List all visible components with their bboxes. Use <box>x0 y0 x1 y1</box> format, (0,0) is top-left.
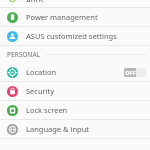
staticText: Lock screen <box>26 105 146 115</box>
staticText: Location <box>26 67 124 77</box>
button[interactable]: OFF <box>124 68 146 77</box>
staticText: PERSONAL <box>7 50 41 59</box>
button[interactable]: ASUS customized settings <box>0 27 150 45</box>
button[interactable]: Power management <box>0 8 150 26</box>
staticText: Language & input <box>26 124 146 134</box>
staticText: Power management <box>26 12 146 22</box>
staticText: Apps <box>26 0 44 2</box>
button[interactable]: Apps <box>0 0 150 7</box>
button[interactable]: Location <box>0 63 150 81</box>
staticText: Security <box>26 86 146 96</box>
button[interactable]: Language & input <box>0 120 150 138</box>
staticText: ASUS customized settings <box>26 31 146 41</box>
button[interactable]: Security <box>0 82 150 100</box>
staticText: OFF <box>125 69 136 76</box>
button[interactable]: Lock screen <box>0 101 150 119</box>
